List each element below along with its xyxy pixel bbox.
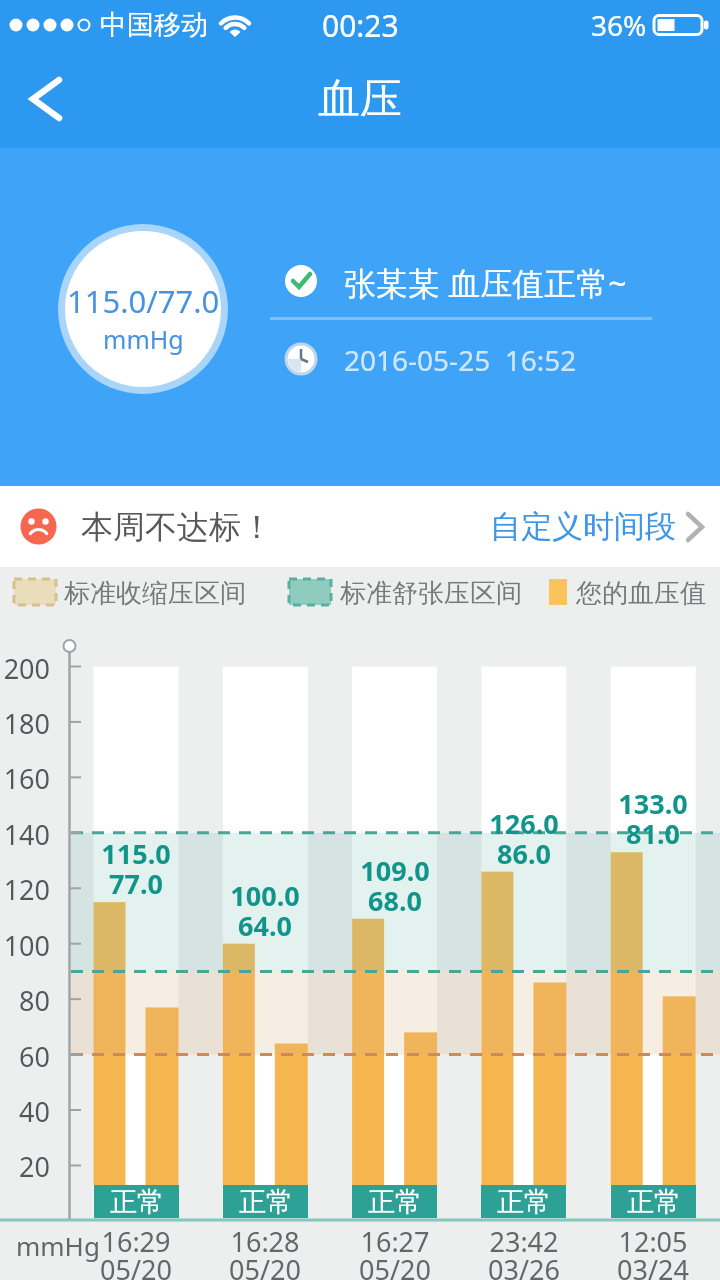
staticText: 80 [0,982,50,1019]
staticText: 16:28 [205,1223,325,1260]
staticText: mmHg [103,322,184,356]
staticText: 00:23 [322,5,399,46]
staticText: 您的血压值 [576,577,706,610]
staticText: 115.0 77.0 [76,835,196,901]
staticText: 03/26 [464,1251,584,1280]
staticText: 20 [0,1148,50,1185]
staticText: 05/20 [205,1251,325,1280]
staticText: 中国移动 [100,8,208,42]
staticText: 03/24 [593,1251,713,1280]
staticText: 100 [0,927,50,964]
staticText: 本周不达标！ [81,507,273,547]
staticText: 05/20 [76,1251,196,1280]
staticText: 16:29 [76,1223,196,1260]
staticText: 正常 [110,1185,164,1218]
staticText: 40 [0,1093,50,1130]
staticText: 05/20 [335,1251,455,1280]
staticText: 36% [591,6,647,44]
staticText: 200 [0,650,50,687]
staticText: 正常 [239,1185,293,1218]
staticText: 12:05 [593,1223,713,1260]
staticText: 血压 [318,73,402,126]
staticText: 2016-05-25 16:52 [344,341,577,379]
staticText: 正常 [368,1185,422,1218]
staticText: 正常 [497,1185,551,1218]
staticText: 标准收缩压区间 [64,577,246,610]
staticText: 180 [0,705,50,742]
staticText: 自定义时间段 [490,507,676,546]
staticText: 100.0 64.0 [205,877,325,943]
staticText: 115.0/77.0 [67,280,220,322]
staticText: 60 [0,1038,50,1075]
staticText: 16:27 [335,1223,455,1260]
staticText: 109.0 68.0 [335,852,455,918]
staticText: 126.0 86.0 [464,805,584,871]
staticText: 张某某 血压值正常~ [344,261,627,305]
staticText: 23:42 [464,1223,584,1260]
staticText: 120 [0,871,50,908]
staticText: 140 [0,816,50,853]
staticText: 160 [0,760,50,797]
staticText: 133.0 81.0 [593,785,713,851]
staticText: 标准舒张压区间 [340,577,522,610]
staticText: mmHg [16,1228,100,1263]
button[interactable]: 自定义时间段 [490,486,720,567]
button[interactable] [14,66,74,132]
staticText: 正常 [627,1185,681,1218]
